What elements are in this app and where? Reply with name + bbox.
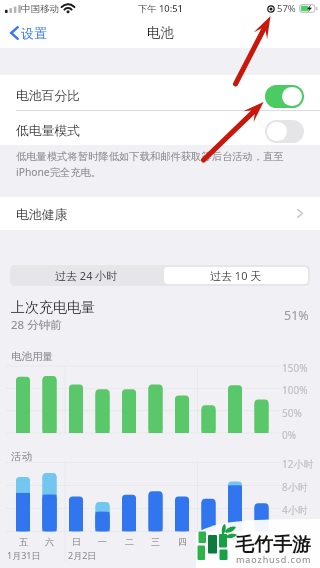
- staticText: maozhusd.com: [236, 553, 312, 565]
- staticText: 50%: [282, 406, 302, 420]
- staticText: 电池用量: [11, 350, 53, 363]
- staticText: 51%: [284, 307, 309, 324]
- staticText: 五: [204, 536, 213, 547]
- button[interactable]: 过去 10 天: [164, 267, 308, 284]
- staticText: 28 分钟前: [11, 317, 62, 333]
- staticText: 毛竹手游: [235, 533, 311, 557]
- staticText: 0%: [282, 428, 297, 442]
- staticText: 2月2日: [68, 549, 97, 561]
- staticText: 中国移动: [21, 3, 59, 15]
- staticText: 低电量模式将暂时降低如下载和邮件获取等后台活动，直至 iPhone完全充电。: [16, 150, 284, 179]
- staticText: 三: [151, 536, 160, 547]
- staticText: 日: [72, 536, 81, 547]
- button[interactable]: 设置: [0, 20, 55, 46]
- staticText: 57%: [277, 2, 296, 15]
- staticText: 电池: [147, 24, 174, 41]
- staticText: 活动: [11, 450, 32, 463]
- staticText: 六: [231, 536, 240, 547]
- staticText: 100%: [282, 383, 308, 397]
- staticText: 日: [257, 536, 266, 547]
- staticText: 8小时: [282, 480, 308, 494]
- staticText: 下午 10:51: [138, 2, 183, 15]
- button[interactable]: 过去 24 小时: [10, 265, 162, 286]
- staticText: 150%: [282, 361, 308, 375]
- staticText: 二: [125, 536, 134, 547]
- staticText: 四: [178, 536, 187, 547]
- button[interactable]: 低电量模式: [0, 113, 320, 149]
- button[interactable]: 电池百分比: [0, 78, 320, 114]
- staticText: 设置: [21, 25, 47, 41]
- staticText: 过去 24 小时: [55, 268, 118, 283]
- staticText: 4小时: [282, 503, 308, 517]
- staticText: 过去 10 天: [210, 268, 262, 283]
- button[interactable]: 电池健康: [0, 197, 320, 230]
- staticText: 五: [19, 536, 28, 547]
- staticText: 1月31日: [7, 549, 41, 561]
- staticText: 电池健康: [16, 207, 68, 223]
- staticText: 六: [45, 536, 54, 547]
- staticText: 电池百分比: [16, 88, 80, 104]
- staticText: 12小时: [282, 457, 314, 471]
- staticText: 一: [98, 536, 107, 547]
- staticText: 低电量模式: [16, 123, 80, 139]
- staticText: 上次充电电量: [11, 299, 95, 317]
